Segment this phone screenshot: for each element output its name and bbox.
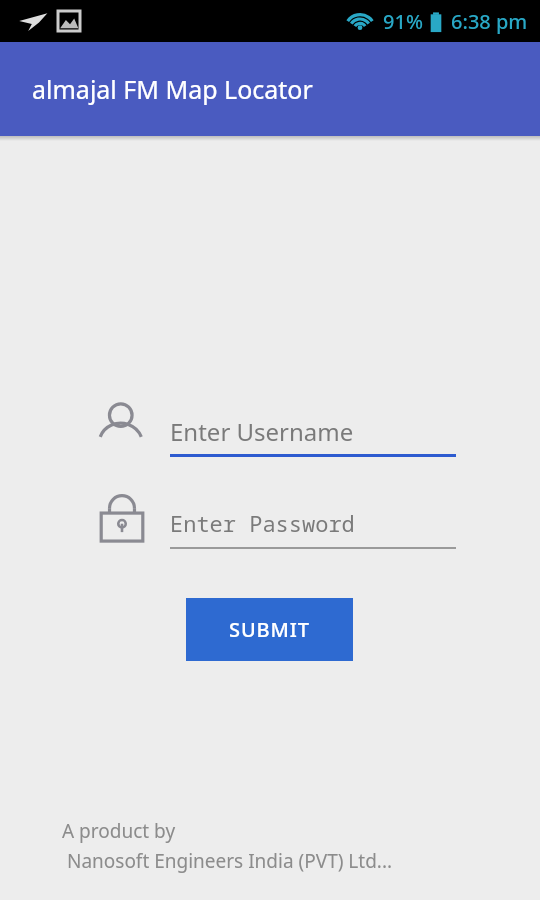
- staticText: 6:38 pm: [451, 8, 528, 35]
- staticText: Enter Password: [170, 508, 355, 538]
- staticText: 91%: [383, 8, 423, 35]
- staticText: SUBMIT: [229, 616, 310, 643]
- staticText: almajal FM Map Locator: [32, 72, 313, 106]
- button[interactable]: SUBMIT: [186, 598, 353, 661]
- staticText: Enter Username: [170, 415, 354, 448]
- button[interactable]: Enter Password: [170, 497, 456, 549]
- staticText: A product by: [62, 818, 176, 844]
- button[interactable]: Enter Username: [170, 405, 456, 457]
- staticText: Nanosoft Engineers India (PVT) Ltd...: [62, 848, 393, 874]
